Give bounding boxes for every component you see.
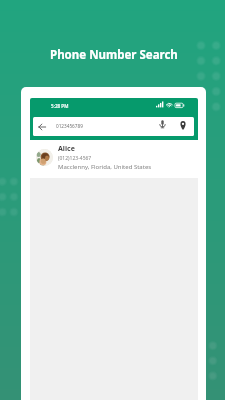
other: Voice search [159,120,166,129]
staticText: (012)123-4567 [58,155,92,162]
staticText: 0123456789 [56,123,83,129]
other: Back [38,123,46,131]
other: Location [179,121,187,130]
staticText: Phone Number Search [50,47,178,63]
staticText: Macclenny, Florida, United States [58,163,152,171]
button[interactable]: Back [33,117,194,136]
staticText: Alice [58,144,75,154]
staticText: 5:28 PM [51,103,69,109]
button[interactable]: Alice [30,140,198,178]
